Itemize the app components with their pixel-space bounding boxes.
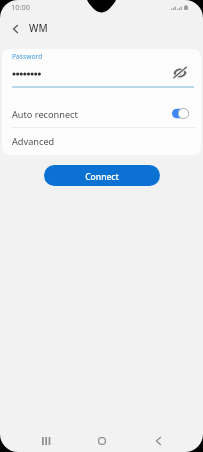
staticText: WM xyxy=(29,21,48,35)
staticText: Auto reconnect xyxy=(12,108,78,121)
button[interactable]: Back xyxy=(130,429,186,452)
button[interactable]: Home xyxy=(74,429,130,452)
staticText: Advanced xyxy=(12,135,55,148)
button[interactable]: Navigate up xyxy=(2,15,29,42)
button[interactable]: Show password xyxy=(169,62,190,83)
button[interactable]: Recent apps xyxy=(17,429,74,452)
button[interactable]: Auto reconnect xyxy=(172,108,189,119)
button[interactable]: Advanced xyxy=(2,127,201,154)
button[interactable]: Auto reconnect xyxy=(2,100,201,127)
staticText: Password xyxy=(12,52,43,61)
button[interactable]: Connect xyxy=(44,165,160,186)
staticText: 10:00 xyxy=(11,2,30,12)
staticText: Connect xyxy=(85,171,119,183)
